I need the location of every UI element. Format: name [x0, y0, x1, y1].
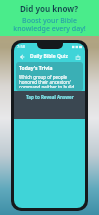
button[interactable]: Back	[17, 52, 26, 61]
staticText: Tap to Reveal Answer	[26, 94, 74, 100]
staticText: Boost your Bible knowledge every day!	[13, 16, 86, 33]
staticText: Did you know?	[20, 3, 79, 14]
staticText: Which group of people honored their ance…	[19, 74, 80, 88]
button[interactable]: Share	[73, 52, 82, 61]
button[interactable]: Tap to Reveal Answer	[14, 91, 85, 119]
staticText: 7:58	[17, 44, 25, 49]
staticText: Today's Trivia	[19, 65, 53, 72]
button[interactable]: Today's Trivia	[16, 62, 83, 91]
staticText: Daily Bible Quiz	[30, 53, 68, 60]
